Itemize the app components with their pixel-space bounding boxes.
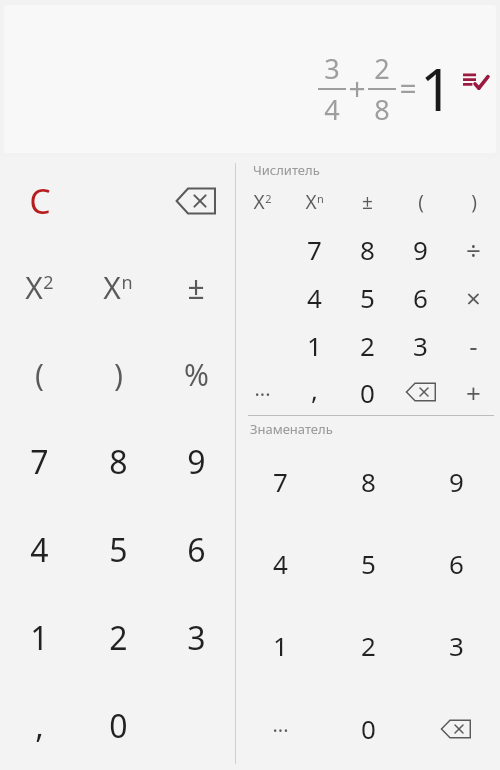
staticText: 3 xyxy=(324,50,340,87)
button[interactable]: X xyxy=(288,179,341,225)
button[interactable]: 3 xyxy=(412,604,500,687)
staticText: 1 xyxy=(30,616,49,660)
staticText: 6 xyxy=(413,280,428,315)
button[interactable]: 9 xyxy=(412,440,500,522)
staticText: X xyxy=(253,189,265,215)
staticText: 2 xyxy=(361,628,376,663)
staticText: ... xyxy=(272,711,289,738)
button[interactable]: ) xyxy=(447,179,500,225)
button[interactable]: ... xyxy=(236,687,324,770)
button[interactable]: × xyxy=(447,273,500,321)
button[interactable]: - xyxy=(447,321,500,369)
staticText: 9 xyxy=(187,440,206,484)
button[interactable]: 8 xyxy=(324,440,412,522)
button[interactable]: 0 xyxy=(324,687,412,770)
staticText: C xyxy=(29,178,51,224)
staticText: 4 xyxy=(30,528,49,572)
staticText: 3 xyxy=(413,328,428,363)
button[interactable]: 3 xyxy=(4,5,496,153)
button[interactable]: , xyxy=(288,369,341,415)
button[interactable]: 3 xyxy=(157,594,235,682)
staticText: 8 xyxy=(360,232,375,267)
button[interactable]: Backspace numerator xyxy=(394,369,447,415)
button[interactable]: 7 xyxy=(236,440,324,522)
button[interactable]: 9 xyxy=(394,225,447,273)
button[interactable]: ± xyxy=(341,179,394,225)
button[interactable]: X xyxy=(236,179,288,225)
staticText: 1 xyxy=(307,328,322,363)
button[interactable]: 5 xyxy=(341,273,394,321)
button[interactable]: 6 xyxy=(157,506,235,594)
staticText: 2 xyxy=(265,191,272,206)
button[interactable]: 0 xyxy=(341,369,394,415)
button[interactable]: 4 xyxy=(236,522,324,604)
button[interactable]: ... xyxy=(236,369,288,415)
button[interactable]: Backspace xyxy=(157,157,235,244)
button[interactable]: 3 xyxy=(394,321,447,369)
staticText: ... xyxy=(254,375,271,402)
button[interactable]: 7 xyxy=(0,418,79,506)
staticText: 5 xyxy=(361,546,376,581)
staticText: 2 xyxy=(360,328,375,363)
button[interactable]: 7 xyxy=(288,225,341,273)
staticText: 4 xyxy=(307,280,322,315)
button[interactable]: 6 xyxy=(394,273,447,321)
button[interactable]: 2 xyxy=(79,594,157,682)
button[interactable]: + xyxy=(447,369,500,415)
button[interactable]: 2 xyxy=(324,604,412,687)
button[interactable]: 1 xyxy=(288,321,341,369)
staticText: ( xyxy=(35,354,44,395)
staticText: + xyxy=(466,375,481,410)
staticText: ± xyxy=(362,189,373,215)
button[interactable]: ± xyxy=(157,244,235,331)
button[interactable]: Backspace denominator xyxy=(412,687,500,770)
button[interactable]: 0 xyxy=(79,682,157,770)
staticText: , xyxy=(311,372,318,407)
staticText: + xyxy=(348,68,366,109)
button[interactable]: 9 xyxy=(157,418,235,506)
button[interactable]: 8 xyxy=(341,225,394,273)
button[interactable]: 1 xyxy=(0,594,79,682)
staticText: 4 xyxy=(324,91,340,128)
button[interactable]: X xyxy=(79,244,157,331)
staticText: 5 xyxy=(109,528,128,572)
button[interactable]: 6 xyxy=(412,522,500,604)
staticText: 5 xyxy=(360,280,375,315)
staticText: ) xyxy=(114,354,123,395)
staticText: 9 xyxy=(413,232,428,267)
staticText: 2 xyxy=(43,270,54,295)
button[interactable]: 8 xyxy=(79,418,157,506)
staticText: 0 xyxy=(109,704,128,748)
button[interactable]: 5 xyxy=(79,506,157,594)
staticText: X xyxy=(305,189,317,215)
button[interactable]: ( xyxy=(0,331,79,418)
staticText: 0 xyxy=(360,375,375,410)
staticText: % xyxy=(184,354,209,395)
button[interactable]: 4 xyxy=(288,273,341,321)
staticText: ( xyxy=(418,189,424,215)
button[interactable]: 5 xyxy=(324,522,412,604)
button[interactable]: 4 xyxy=(0,506,79,594)
staticText: = xyxy=(399,68,417,109)
button[interactable]: ÷ xyxy=(447,225,500,273)
staticText: 8 xyxy=(374,91,390,128)
staticText: 7 xyxy=(307,232,322,267)
staticText: 2 xyxy=(374,50,390,87)
staticText: 3 xyxy=(449,628,464,663)
staticText: 7 xyxy=(273,464,288,499)
button[interactable]: X xyxy=(0,244,79,331)
staticText: 1 xyxy=(420,49,454,128)
button[interactable]: C xyxy=(0,157,79,244)
staticText: × xyxy=(466,280,481,315)
staticText: 3 xyxy=(187,616,206,660)
button[interactable]: , xyxy=(0,682,79,770)
button[interactable]: ( xyxy=(394,179,447,225)
button[interactable]: % xyxy=(157,331,235,418)
button[interactable]: ) xyxy=(79,331,157,418)
button[interactable]: 1 xyxy=(236,604,324,687)
button[interactable]: 2 xyxy=(341,321,394,369)
